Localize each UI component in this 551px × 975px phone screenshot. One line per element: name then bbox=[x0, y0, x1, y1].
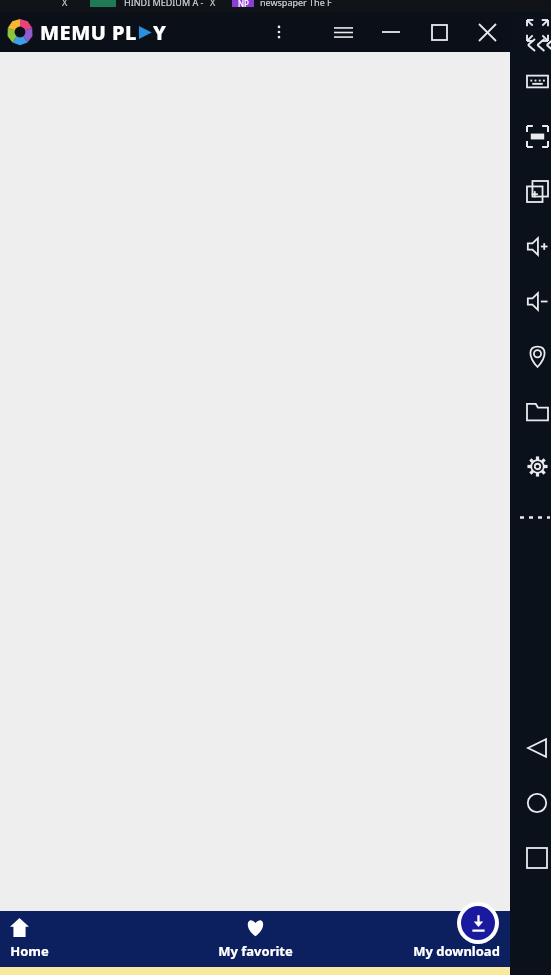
button[interactable]: Home bbox=[0, 911, 170, 967]
button[interactable]: Menu bbox=[326, 15, 360, 49]
staticText: X bbox=[62, 0, 68, 8]
button[interactable]: Maximize bbox=[422, 15, 456, 49]
staticText: X bbox=[210, 0, 216, 8]
button[interactable]: My download bbox=[340, 911, 510, 967]
staticText: HINDI MEDIUM A - bbox=[124, 0, 204, 8]
button[interactable]: Volume down bbox=[520, 284, 551, 318]
button[interactable]: Close bbox=[470, 15, 504, 49]
staticText: Home bbox=[10, 942, 49, 960]
staticText: My download bbox=[413, 942, 500, 960]
button[interactable]: Fullscreen bbox=[520, 13, 551, 47]
button[interactable]: My favorite bbox=[170, 911, 340, 967]
button[interactable]: Home bbox=[520, 786, 551, 820]
button[interactable]: Back bbox=[520, 731, 551, 765]
button[interactable]: Volume up bbox=[520, 229, 551, 263]
button[interactable]: Minimize bbox=[374, 15, 408, 49]
button[interactable]: New instance bbox=[520, 174, 551, 208]
staticText: My favorite bbox=[218, 942, 293, 960]
button[interactable]: Keyboard bbox=[520, 64, 551, 98]
button[interactable]: Location bbox=[520, 339, 551, 373]
button[interactable]: Install APK bbox=[520, 119, 551, 153]
staticText: NP bbox=[238, 0, 249, 7]
button[interactable]: Collapse toolbar bbox=[524, 28, 551, 62]
staticText: newspaper The F bbox=[260, 0, 332, 8]
button[interactable]: Recents bbox=[520, 841, 551, 875]
staticText: MEMU PL bbox=[40, 19, 137, 46]
staticText: Y bbox=[153, 19, 166, 46]
button[interactable]: Settings bbox=[520, 449, 551, 483]
button[interactable]: Shared folder bbox=[520, 394, 551, 428]
button[interactable]: My download bbox=[457, 902, 499, 944]
button[interactable]: More options bbox=[262, 15, 296, 49]
